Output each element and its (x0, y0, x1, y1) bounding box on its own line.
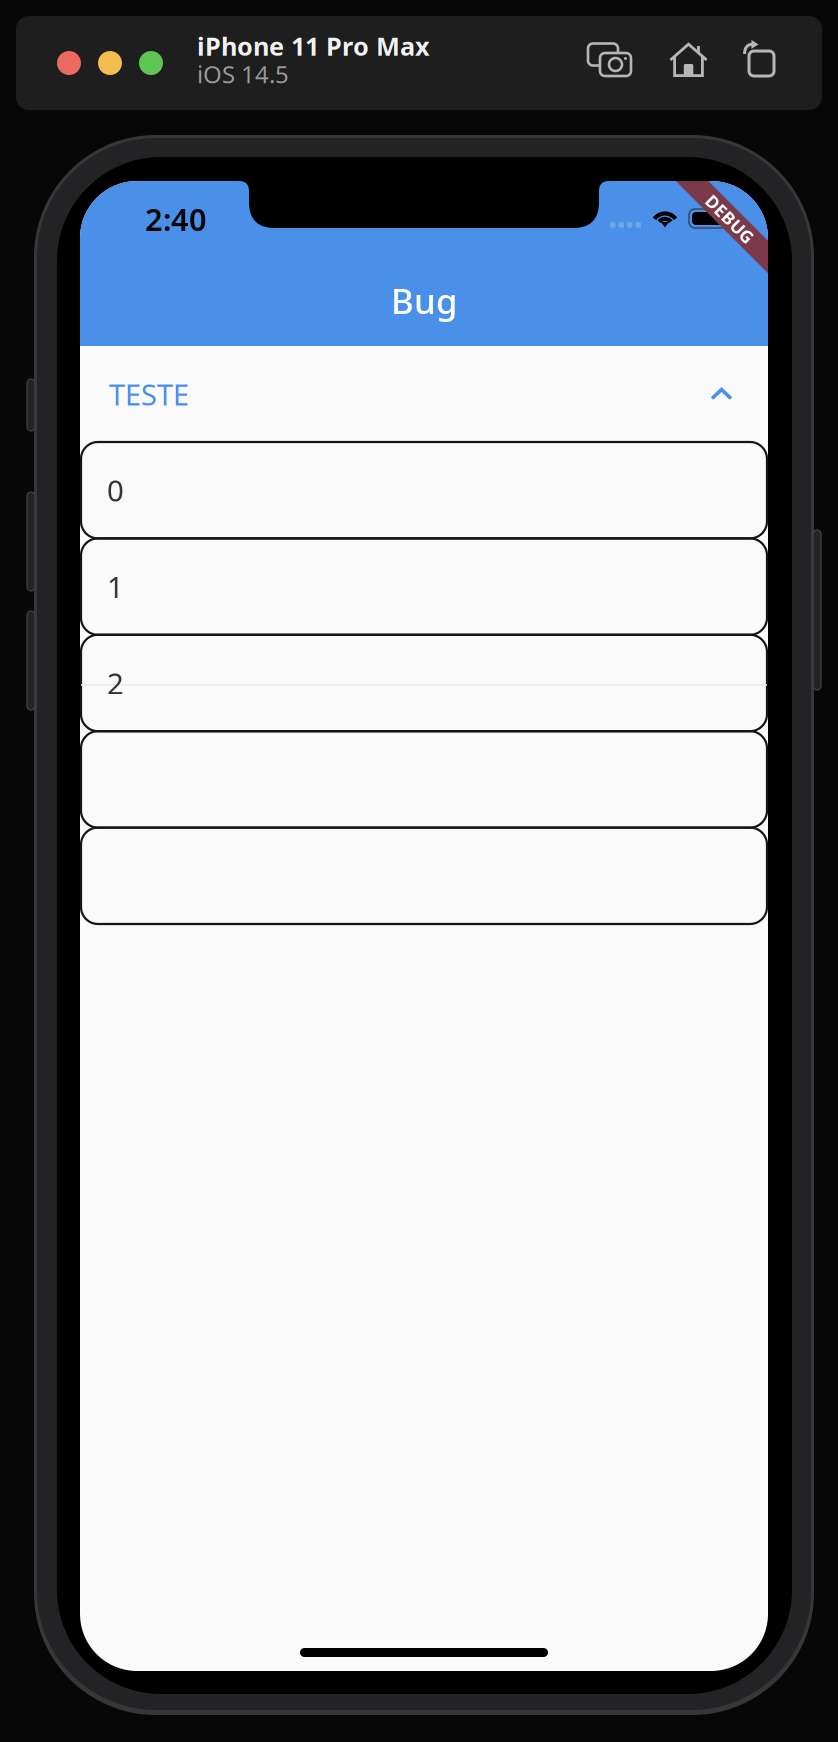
button[interactable] (80, 828, 768, 924)
staticText: TESTE (109, 374, 189, 413)
staticText: 0 (107, 471, 124, 510)
staticText: 2:40 (145, 199, 207, 239)
button[interactable]: 0 (80, 442, 768, 538)
button[interactable]: Screenshot (575, 29, 645, 90)
button[interactable]: TESTE (80, 346, 768, 442)
staticText: 1 (107, 567, 124, 606)
staticText: Bug (391, 277, 457, 323)
button[interactable]: Rotate (730, 27, 788, 89)
staticText: DEBUG (699, 207, 760, 230)
button[interactable]: 1 (80, 538, 768, 635)
staticText: 2 (107, 663, 124, 702)
button[interactable]: Home (656, 28, 721, 90)
staticText: iOS 14.5 (197, 58, 289, 90)
button[interactable] (80, 731, 768, 828)
staticText: iPhone 11 Pro Max (197, 29, 430, 63)
button[interactable]: 2 (80, 635, 768, 731)
